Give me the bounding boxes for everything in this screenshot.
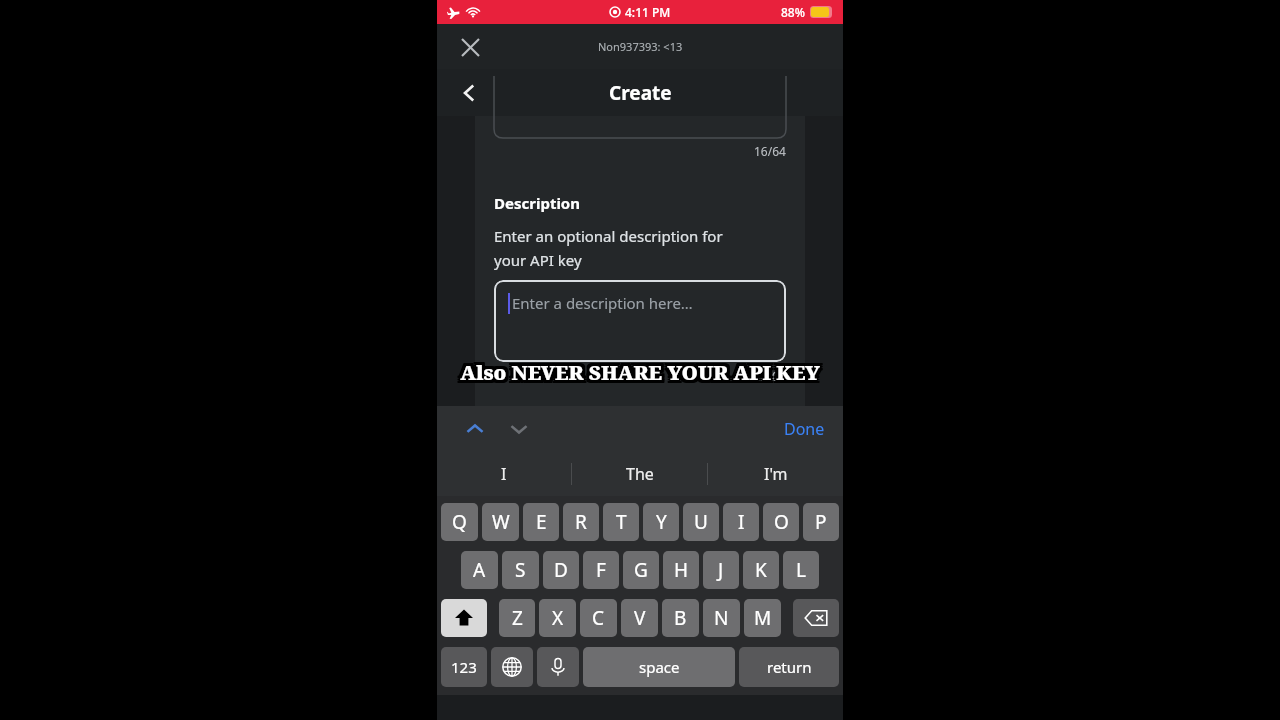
staticText: The <box>626 463 654 485</box>
button[interactable]: B <box>662 599 699 637</box>
staticText: Also NEVER SHARE YOUR API KEY <box>457 357 817 384</box>
button[interactable]: I <box>723 503 759 541</box>
staticText: R <box>575 509 587 535</box>
staticText: Also NEVER SHARE YOUR API KEY <box>458 362 818 389</box>
staticText: A <box>473 557 486 583</box>
staticText: Also NEVER SHARE YOUR API KEY <box>460 359 820 386</box>
staticText: N <box>714 605 729 631</box>
button[interactable]: A <box>461 551 498 589</box>
button[interactable]: Previous field <box>457 411 493 447</box>
staticText: 123 <box>451 657 477 677</box>
button[interactable]: I'm <box>708 451 843 496</box>
staticText: F <box>596 557 606 583</box>
button[interactable]: O <box>763 503 799 541</box>
staticText: Also NEVER SHARE YOUR API KEY <box>458 356 818 383</box>
staticText: Also NEVER SHARE YOUR API KEY <box>457 359 817 386</box>
staticText: J <box>718 557 724 583</box>
button[interactable]: Close <box>453 30 487 64</box>
button[interactable]: T <box>603 503 639 541</box>
staticText: Also NEVER SHARE YOUR API KEY <box>460 362 820 389</box>
button[interactable]: N <box>703 599 740 637</box>
staticText: Also NEVER SHARE YOUR API KEY <box>458 361 818 388</box>
staticText: U <box>694 509 708 535</box>
staticText: I <box>738 509 745 535</box>
staticText: Also NEVER SHARE YOUR API KEY <box>458 359 818 386</box>
button[interactable]: L <box>783 551 819 589</box>
button[interactable]: X <box>539 599 576 637</box>
staticText: B <box>674 605 687 631</box>
staticText: 0/1000 <box>747 368 786 384</box>
staticText: M <box>754 605 772 631</box>
button[interactable]: F <box>583 551 619 589</box>
button[interactable]: K <box>743 551 779 589</box>
staticText: Description <box>494 193 580 213</box>
button[interactable]: space <box>583 647 735 687</box>
staticText: Also NEVER SHARE YOUR API KEY <box>457 356 817 383</box>
button[interactable]: Z <box>499 599 535 637</box>
staticText: C <box>592 605 605 631</box>
staticText: Also NEVER SHARE YOUR API KEY <box>458 357 818 384</box>
button[interactable]: return <box>739 647 839 687</box>
button[interactable]: W <box>482 503 519 541</box>
staticText: I <box>501 463 507 485</box>
button[interactable]: G <box>623 551 659 589</box>
button[interactable]: 123 <box>441 647 487 687</box>
button[interactable]: Y <box>643 503 679 541</box>
staticText: Z <box>512 605 523 631</box>
staticText: E <box>536 509 547 535</box>
staticText: Enter an optional description for your A… <box>494 226 723 270</box>
staticText: K <box>755 557 767 583</box>
button[interactable]: Switch language <box>491 647 533 687</box>
staticText: Also NEVER SHARE YOUR API KEY <box>457 361 817 388</box>
button[interactable]: Next field <box>501 411 537 447</box>
staticText: V <box>634 605 646 631</box>
button[interactable]: S <box>502 551 539 589</box>
button[interactable]: J <box>703 551 739 589</box>
button[interactable]: P <box>803 503 839 541</box>
staticText: 4:11 PM <box>625 4 671 20</box>
staticText: Create <box>609 80 672 106</box>
staticText: O <box>774 509 789 535</box>
staticText: X <box>552 605 564 631</box>
staticText: S <box>515 557 526 583</box>
staticText: Done <box>784 418 825 440</box>
button[interactable]: V <box>621 599 658 637</box>
button[interactable]: I <box>437 451 571 496</box>
staticText: P <box>815 509 827 535</box>
staticText: Also NEVER SHARE YOUR API KEY <box>463 357 823 384</box>
staticText: I'm <box>764 463 788 485</box>
staticText: Y <box>656 509 667 535</box>
staticText: Also NEVER SHARE YOUR API KEY <box>462 356 822 383</box>
button[interactable]: E <box>523 503 559 541</box>
staticText: Also NEVER SHARE YOUR API KEY <box>463 359 823 386</box>
button[interactable]: Q <box>441 503 478 541</box>
staticText: Also NEVER SHARE YOUR API KEY <box>460 356 820 383</box>
staticText: Non937393: <13 <box>598 39 683 54</box>
button[interactable]: C <box>580 599 617 637</box>
staticText: Also NEVER SHARE YOUR API KEY <box>462 359 822 386</box>
staticText: 16/64 <box>754 143 786 159</box>
button[interactable]: Done <box>784 418 825 440</box>
button[interactable]: M <box>744 599 781 637</box>
staticText: Also NEVER SHARE YOUR API KEY <box>457 362 817 389</box>
staticText: H <box>674 557 689 583</box>
button[interactable]: Backspace <box>793 599 839 637</box>
button[interactable]: Back <box>453 76 487 110</box>
staticText: G <box>634 557 648 583</box>
staticText: Q <box>452 509 467 535</box>
button[interactable]: H <box>663 551 699 589</box>
button[interactable]: D <box>543 551 579 589</box>
button[interactable]: U <box>683 503 719 541</box>
button[interactable]: The <box>572 451 707 496</box>
staticText: T <box>616 509 627 535</box>
staticText: D <box>554 557 568 583</box>
staticText: Also NEVER SHARE YOUR API KEY <box>462 362 822 389</box>
staticText: Also NEVER SHARE YOUR API KEY <box>462 361 822 388</box>
staticText: Also NEVER SHARE YOUR API KEY <box>460 361 820 388</box>
button[interactable]: Dictation <box>537 647 579 687</box>
button[interactable]: Shift <box>441 599 487 637</box>
staticText: Also NEVER SHARE YOUR API KEY <box>463 361 823 388</box>
staticText: Also NEVER SHARE YOUR API KEY <box>463 356 823 383</box>
button[interactable]: R <box>563 503 599 541</box>
button[interactable]: Enter a description here… <box>494 280 786 362</box>
